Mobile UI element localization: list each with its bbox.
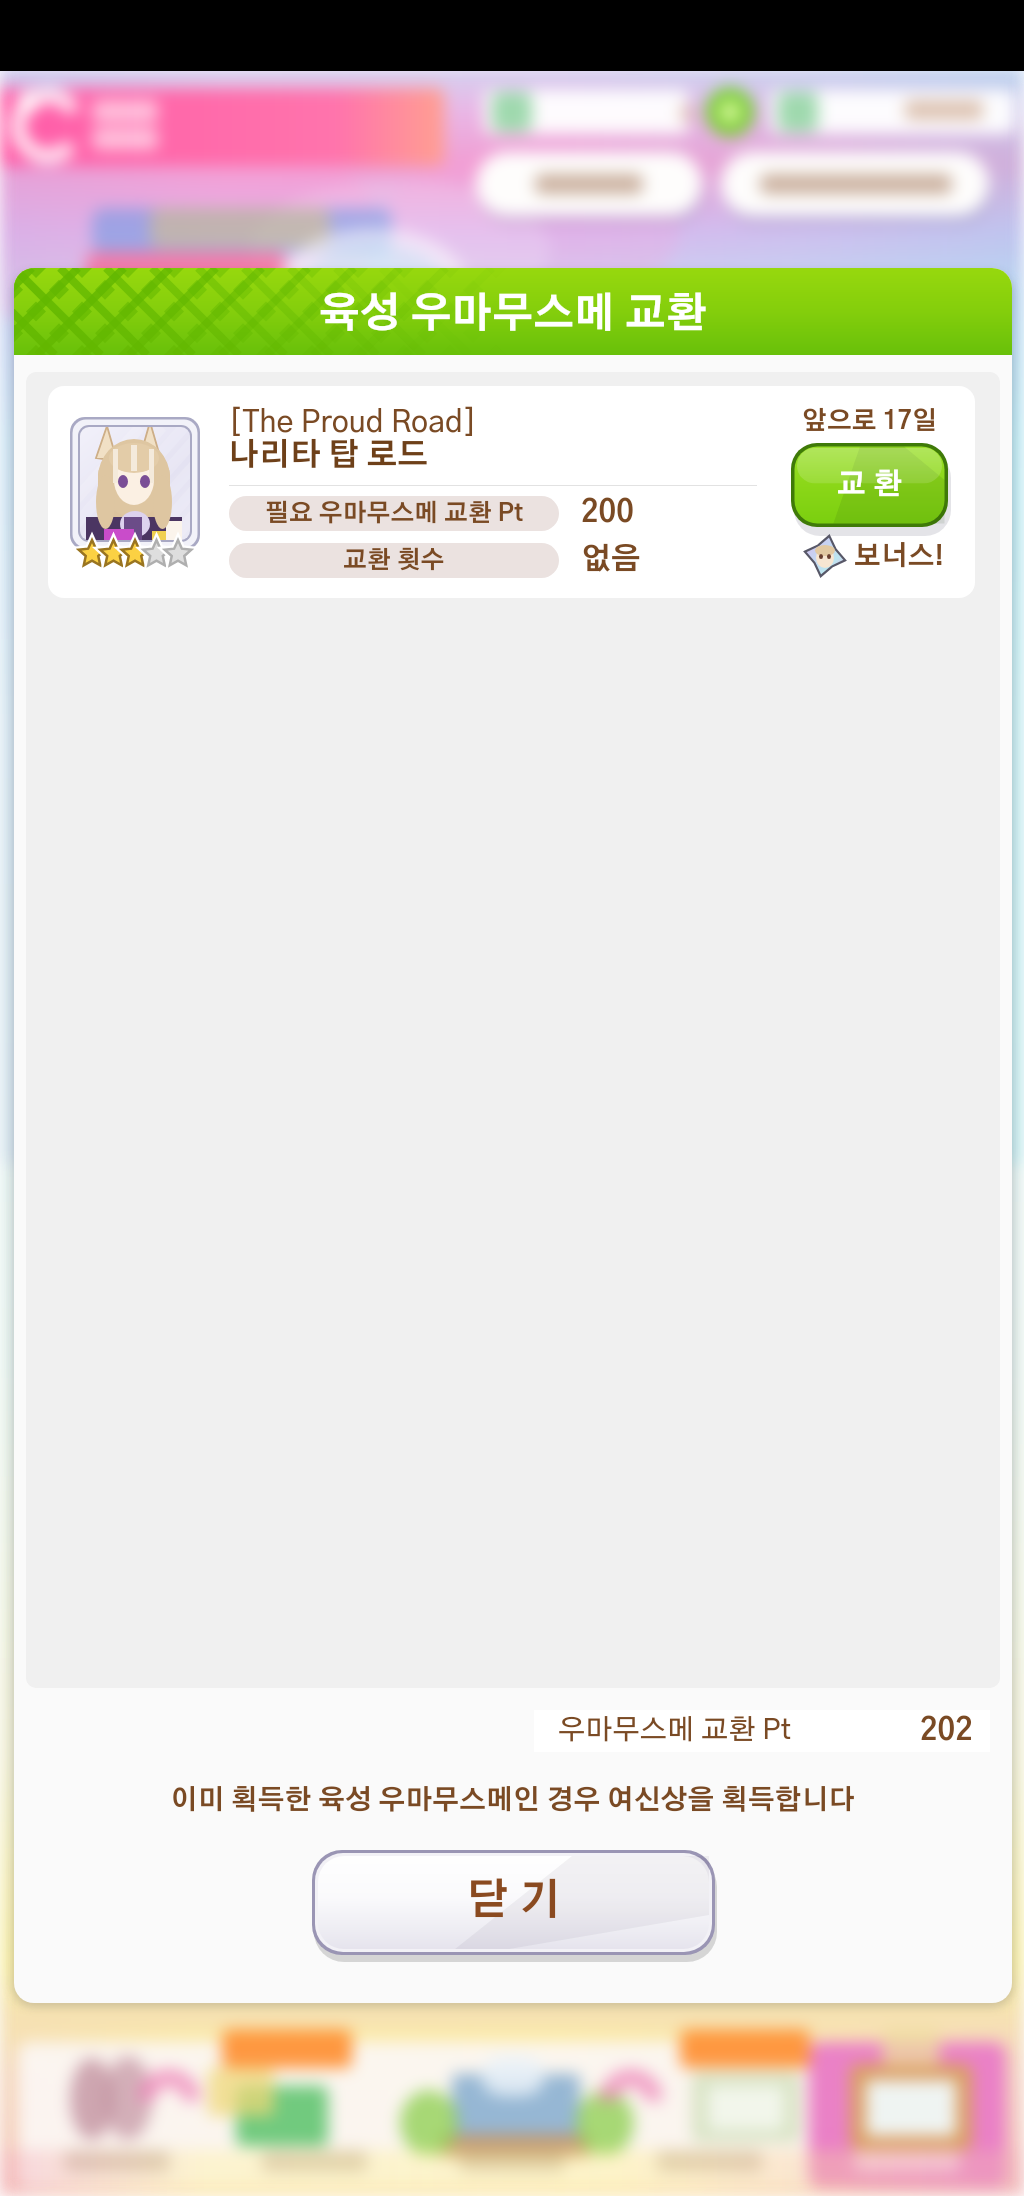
staticText: 보너스!	[854, 543, 944, 570]
button[interactable]: [The Proud Road]	[48, 386, 975, 598]
staticText: 나리타 탑 로드	[228, 440, 429, 471]
staticText: 육성 우마무스메 교환	[319, 294, 707, 335]
staticText: 200	[581, 498, 634, 528]
staticText: 202	[920, 1716, 973, 1746]
button[interactable]: 닫 기	[312, 1850, 715, 1955]
staticText: 교환 횟수	[343, 549, 445, 573]
staticText: [The Proud Road]	[229, 408, 477, 438]
staticText: 앞으로 17일	[802, 409, 938, 434]
staticText: 이미 획득한 육성 우마무스메인 경우 여신상을 획득합니다	[14, 1787, 1012, 1814]
staticText: 닫 기	[467, 1880, 561, 1922]
button[interactable]: 교환	[791, 443, 948, 527]
staticText: 교 환	[837, 471, 902, 500]
staticText: 없음	[581, 545, 641, 575]
staticText: 우마무스메 교환 Pt	[558, 1717, 791, 1745]
staticText: 필요 우마무스메 교환 Pt	[265, 502, 524, 526]
